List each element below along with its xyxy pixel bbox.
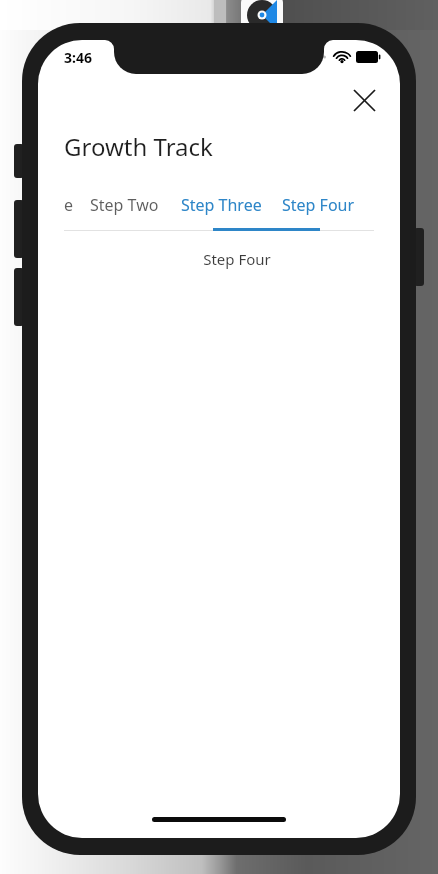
button[interactable]: Step Four — [282, 185, 355, 225]
button[interactable]: Close — [342, 78, 386, 122]
staticText: Step Two — [90, 194, 159, 216]
button[interactable]: Step Three — [181, 185, 262, 225]
button[interactable]: Step Two — [90, 185, 159, 225]
staticText: Growth Track — [64, 130, 213, 163]
staticText: Step Four — [282, 194, 355, 216]
staticText: e — [64, 194, 72, 216]
button[interactable]: e — [64, 185, 72, 225]
staticText: Step Three — [181, 194, 262, 216]
staticText: Step Four — [56, 249, 400, 269]
staticText: 3:46 — [64, 48, 92, 67]
